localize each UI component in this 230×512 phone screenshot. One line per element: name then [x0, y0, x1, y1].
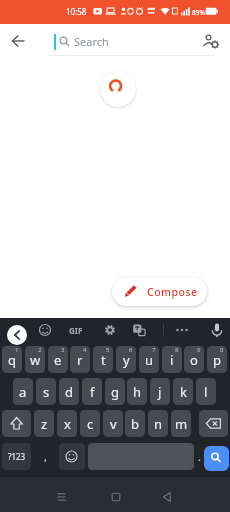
staticText: 3	[61, 346, 65, 354]
button[interactable]	[200, 29, 224, 53]
staticText: k	[180, 383, 187, 401]
button[interactable]: u	[139, 346, 159, 373]
button[interactable]: h	[127, 378, 147, 405]
staticText: 8	[175, 346, 179, 354]
button[interactable]: k	[173, 378, 193, 405]
staticText: t	[101, 351, 106, 369]
staticText: Compose	[147, 285, 198, 299]
button[interactable]: p	[207, 346, 227, 373]
button[interactable]: d	[59, 378, 79, 405]
staticText: GIF	[69, 325, 83, 336]
staticText: b	[131, 415, 139, 433]
button[interactable]: Compose	[112, 277, 207, 306]
button[interactable]: GIF	[69, 325, 83, 336]
button[interactable]: .	[194, 446, 205, 466]
button[interactable]: j	[150, 378, 170, 405]
staticText: 7	[152, 346, 156, 354]
button[interactable]: f	[82, 378, 102, 405]
staticText: n	[154, 415, 163, 433]
staticText: d	[65, 383, 73, 401]
staticText: j	[158, 383, 162, 401]
button[interactable]	[204, 446, 229, 471]
button[interactable]: y	[116, 346, 136, 373]
button[interactable]	[52, 488, 71, 506]
staticText: ?123	[8, 451, 26, 462]
button[interactable]	[88, 443, 194, 470]
button[interactable]: ,	[40, 446, 51, 466]
button[interactable]: q	[2, 346, 22, 373]
staticText: f	[90, 383, 95, 401]
staticText: l	[204, 383, 208, 401]
button[interactable]: ?123	[2, 443, 31, 470]
staticText: 9	[197, 346, 201, 354]
staticText: ,	[44, 449, 47, 464]
button[interactable]	[106, 488, 125, 506]
staticText: .	[198, 449, 201, 464]
button[interactable]	[2, 410, 31, 437]
button[interactable]: z	[34, 410, 54, 437]
staticText: h	[133, 383, 142, 401]
button[interactable]: a	[13, 378, 33, 405]
staticText: 6	[129, 346, 133, 354]
button[interactable]: g	[105, 378, 125, 405]
staticText: r	[77, 351, 83, 369]
staticText: 5	[106, 346, 110, 354]
staticText: u	[145, 351, 154, 369]
staticText: y	[123, 351, 130, 369]
button[interactable]	[199, 410, 228, 437]
button[interactable]: Search	[74, 34, 109, 49]
staticText: i	[170, 351, 174, 369]
button[interactable]	[59, 443, 85, 470]
button[interactable]: r	[70, 346, 90, 373]
button[interactable]: c	[80, 410, 100, 437]
staticText: g	[111, 383, 119, 401]
staticText: 2	[38, 346, 42, 354]
button[interactable]: n	[148, 410, 168, 437]
staticText: a	[19, 383, 27, 401]
button[interactable]: e	[48, 346, 68, 373]
staticText: e	[54, 351, 62, 369]
staticText: 10:58	[66, 6, 87, 17]
staticText: 4	[83, 346, 87, 354]
staticText: 89%	[192, 8, 205, 17]
button[interactable]: x	[57, 410, 77, 437]
button[interactable]: m	[171, 410, 191, 437]
button[interactable]	[157, 488, 176, 506]
staticText: 0	[220, 346, 224, 354]
staticText: m	[175, 415, 188, 433]
staticText: c	[87, 415, 94, 433]
button[interactable]: o	[184, 346, 204, 373]
staticText: o	[190, 351, 198, 369]
button[interactable]: b	[125, 410, 145, 437]
button[interactable]: l	[196, 378, 216, 405]
button[interactable]: s	[36, 378, 56, 405]
staticText: q	[8, 351, 16, 369]
staticText: 1	[15, 346, 19, 354]
staticText: z	[41, 415, 48, 433]
staticText: Search	[74, 34, 109, 49]
staticText: w	[30, 351, 41, 369]
staticText: x	[64, 415, 71, 433]
button[interactable]: i	[162, 346, 182, 373]
button[interactable]: t	[93, 346, 113, 373]
staticText: p	[213, 351, 221, 369]
staticText: s	[43, 383, 50, 401]
button[interactable]: w	[25, 346, 45, 373]
button[interactable]: v	[103, 410, 123, 437]
button[interactable]	[6, 29, 30, 53]
button[interactable]	[7, 325, 27, 345]
staticText: v	[110, 415, 117, 433]
